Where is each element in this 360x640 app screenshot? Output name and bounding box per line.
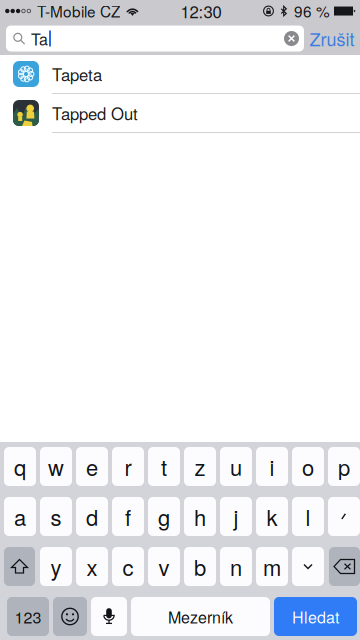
staticText: v (158, 551, 169, 582)
staticText: w (48, 451, 64, 482)
button[interactable]: q (4, 447, 36, 486)
staticText: Zrušit (309, 26, 354, 51)
staticText: o (302, 451, 314, 482)
button[interactable]: Delete (329, 547, 360, 586)
button[interactable]: j (220, 497, 252, 536)
staticText: k (266, 501, 277, 532)
button[interactable]: d (76, 497, 108, 536)
button[interactable]: Tapped Out (0, 94, 360, 132)
button[interactable]: g (148, 497, 180, 536)
button[interactable]: Acute accent (328, 497, 360, 536)
staticText: 96 % (294, 0, 330, 22)
staticText: a (14, 501, 26, 532)
staticText: b (194, 551, 206, 582)
staticText: Ta (31, 27, 48, 50)
button[interactable]: x (76, 547, 108, 586)
button[interactable]: v (148, 547, 180, 586)
staticText: 12:30 (180, 0, 221, 23)
staticText: n (230, 551, 242, 582)
button[interactable]: n (220, 547, 252, 586)
staticText: u (230, 451, 242, 482)
button[interactable]: p (328, 447, 360, 486)
staticText: 123 (14, 605, 41, 628)
staticText: l (305, 501, 310, 532)
button[interactable]: u (220, 447, 252, 486)
button[interactable]: Emoji (53, 597, 87, 636)
button[interactable]: c (112, 547, 144, 586)
button[interactable]: f (112, 497, 144, 536)
button[interactable]: Mezerník (131, 597, 270, 636)
staticText: T-Mobile CZ (37, 0, 120, 22)
button[interactable]: Zrušit (304, 22, 360, 55)
button[interactable]: w (40, 447, 72, 486)
button[interactable]: i (256, 447, 288, 486)
button[interactable]: 123 (7, 597, 49, 636)
staticText: e (86, 451, 98, 482)
staticText: j (233, 501, 238, 532)
button[interactable]: e (76, 447, 108, 486)
button[interactable]: Caron accent (292, 547, 324, 586)
button[interactable]: s (40, 497, 72, 536)
staticText: Tapped Out (52, 101, 138, 125)
button[interactable]: l (292, 497, 324, 536)
button[interactable]: Shift (4, 547, 35, 586)
button[interactable]: m (256, 547, 288, 586)
staticText: Tapeta (52, 62, 102, 86)
staticText: h (194, 501, 206, 532)
staticText: r (124, 451, 131, 482)
staticText: s (50, 501, 61, 532)
staticText: p (338, 451, 350, 482)
staticText: d (86, 501, 98, 532)
staticText: t (161, 451, 167, 482)
staticText: g (158, 501, 170, 532)
button[interactable]: Tapeta (0, 55, 360, 93)
button[interactable]: t (148, 447, 180, 486)
button[interactable]: o (292, 447, 324, 486)
staticText: Hledat (292, 605, 339, 628)
button[interactable]: a (4, 497, 36, 536)
staticText: q (14, 451, 26, 482)
staticText: f (125, 501, 131, 532)
button[interactable]: y (40, 547, 72, 586)
staticText: x (86, 551, 97, 582)
button[interactable]: b (184, 547, 216, 586)
staticText: z (194, 451, 205, 482)
staticText: y (50, 551, 61, 582)
button[interactable]: h (184, 497, 216, 536)
button[interactable]: r (112, 447, 144, 486)
staticText: Mezerník (168, 605, 233, 628)
button[interactable]: z (184, 447, 216, 486)
staticText: c (122, 551, 133, 582)
button[interactable]: Hledat (274, 597, 357, 636)
button[interactable]: Dictation (91, 597, 127, 636)
staticText: m (263, 551, 281, 582)
staticText: i (269, 451, 274, 482)
button[interactable]: k (256, 497, 288, 536)
